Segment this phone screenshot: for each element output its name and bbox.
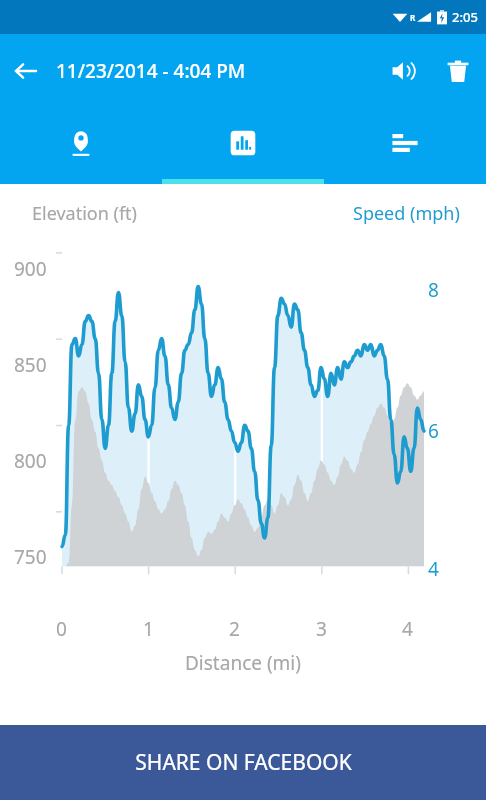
staticText: Elevation (ft) [32,201,138,226]
staticText: SHARE ON FACEBOOK [135,748,352,777]
staticText: 3 [316,616,327,642]
staticText: 750 [14,544,47,570]
staticText: 800 [14,448,47,474]
button[interactable]: Volume [378,45,430,97]
staticText: 0 [56,616,67,642]
staticText: 1 [143,616,154,642]
staticText: 11/23/2014 - 4:04 PM [56,58,246,84]
button[interactable]: Delete [430,43,486,99]
staticText: 6 [428,418,439,444]
button[interactable]: Chart [162,108,324,184]
staticText: R [410,12,416,23]
staticText: 850 [14,352,47,378]
button[interactable]: SHARE ON FACEBOOK [0,725,486,800]
staticText: 8 [428,277,439,303]
staticText: Speed (mph) [353,201,460,226]
staticText: 4 [402,616,413,642]
staticText: 2:05 [452,8,478,26]
staticText: 900 [14,256,47,282]
staticText: Distance (mi) [185,650,301,676]
staticText: 2 [229,616,240,642]
button[interactable]: Map [0,108,162,184]
button[interactable]: Details [324,108,486,184]
button[interactable]: Back [0,45,52,97]
staticText: 4 [428,556,439,582]
